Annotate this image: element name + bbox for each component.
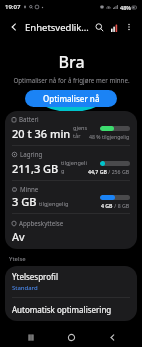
staticText: Optimaliser nå for å frigjøre mer minne. xyxy=(13,76,130,84)
staticText: 20 t 36 min xyxy=(12,126,71,141)
staticText: Batteri xyxy=(19,115,39,123)
button[interactable]: Automatisk optimalisering xyxy=(5,298,137,321)
staticText: / 8 GB xyxy=(113,202,130,209)
staticText: Automatisk optimalisering xyxy=(12,304,112,315)
staticText: 44,7 GB xyxy=(88,168,107,175)
staticText: 3 GB xyxy=(12,194,37,209)
staticText: tilgjengelig xyxy=(61,159,88,175)
button[interactable]: Optimaliser nå xyxy=(25,90,117,107)
button[interactable]: Lagring xyxy=(5,146,137,180)
staticText: Bra xyxy=(58,51,85,73)
staticText: 211,3 GB xyxy=(12,161,59,176)
button[interactable]: Search xyxy=(92,20,107,35)
button[interactable]: Batteri xyxy=(5,111,137,145)
button[interactable]: More options xyxy=(122,20,136,34)
button[interactable]: Appbeskyttelse xyxy=(5,214,137,249)
staticText: Av xyxy=(12,229,25,244)
staticText: tilgjengelig xyxy=(39,200,69,208)
staticText: Standard xyxy=(12,284,38,292)
staticText: 48 % tilgjengelig xyxy=(89,133,130,140)
staticText: / 256 GB xyxy=(107,168,130,175)
button[interactable]: Minne xyxy=(5,181,137,213)
staticText: 48% xyxy=(120,4,131,11)
staticText: Optimaliser nå xyxy=(43,93,100,104)
staticText: 19:07 xyxy=(5,3,21,11)
button[interactable]: Ytelsesprofil xyxy=(5,266,137,297)
button[interactable]: Usage chart xyxy=(107,20,122,35)
staticText: gjenstår xyxy=(73,124,89,140)
staticText: Ytelsesprofil xyxy=(12,271,58,282)
staticText: Lagring xyxy=(20,150,43,158)
staticText: Appbeskyttelse xyxy=(19,219,64,227)
button[interactable]: Back xyxy=(102,327,122,347)
button[interactable]: Back xyxy=(6,19,22,35)
staticText: Enhetsvedlike… xyxy=(25,21,92,34)
staticText: Ytelse xyxy=(9,255,26,263)
staticText: 4 GB xyxy=(101,202,113,209)
button[interactable]: Recent apps xyxy=(21,327,41,347)
staticText: Minne xyxy=(20,185,39,193)
button[interactable]: Home xyxy=(61,327,81,347)
